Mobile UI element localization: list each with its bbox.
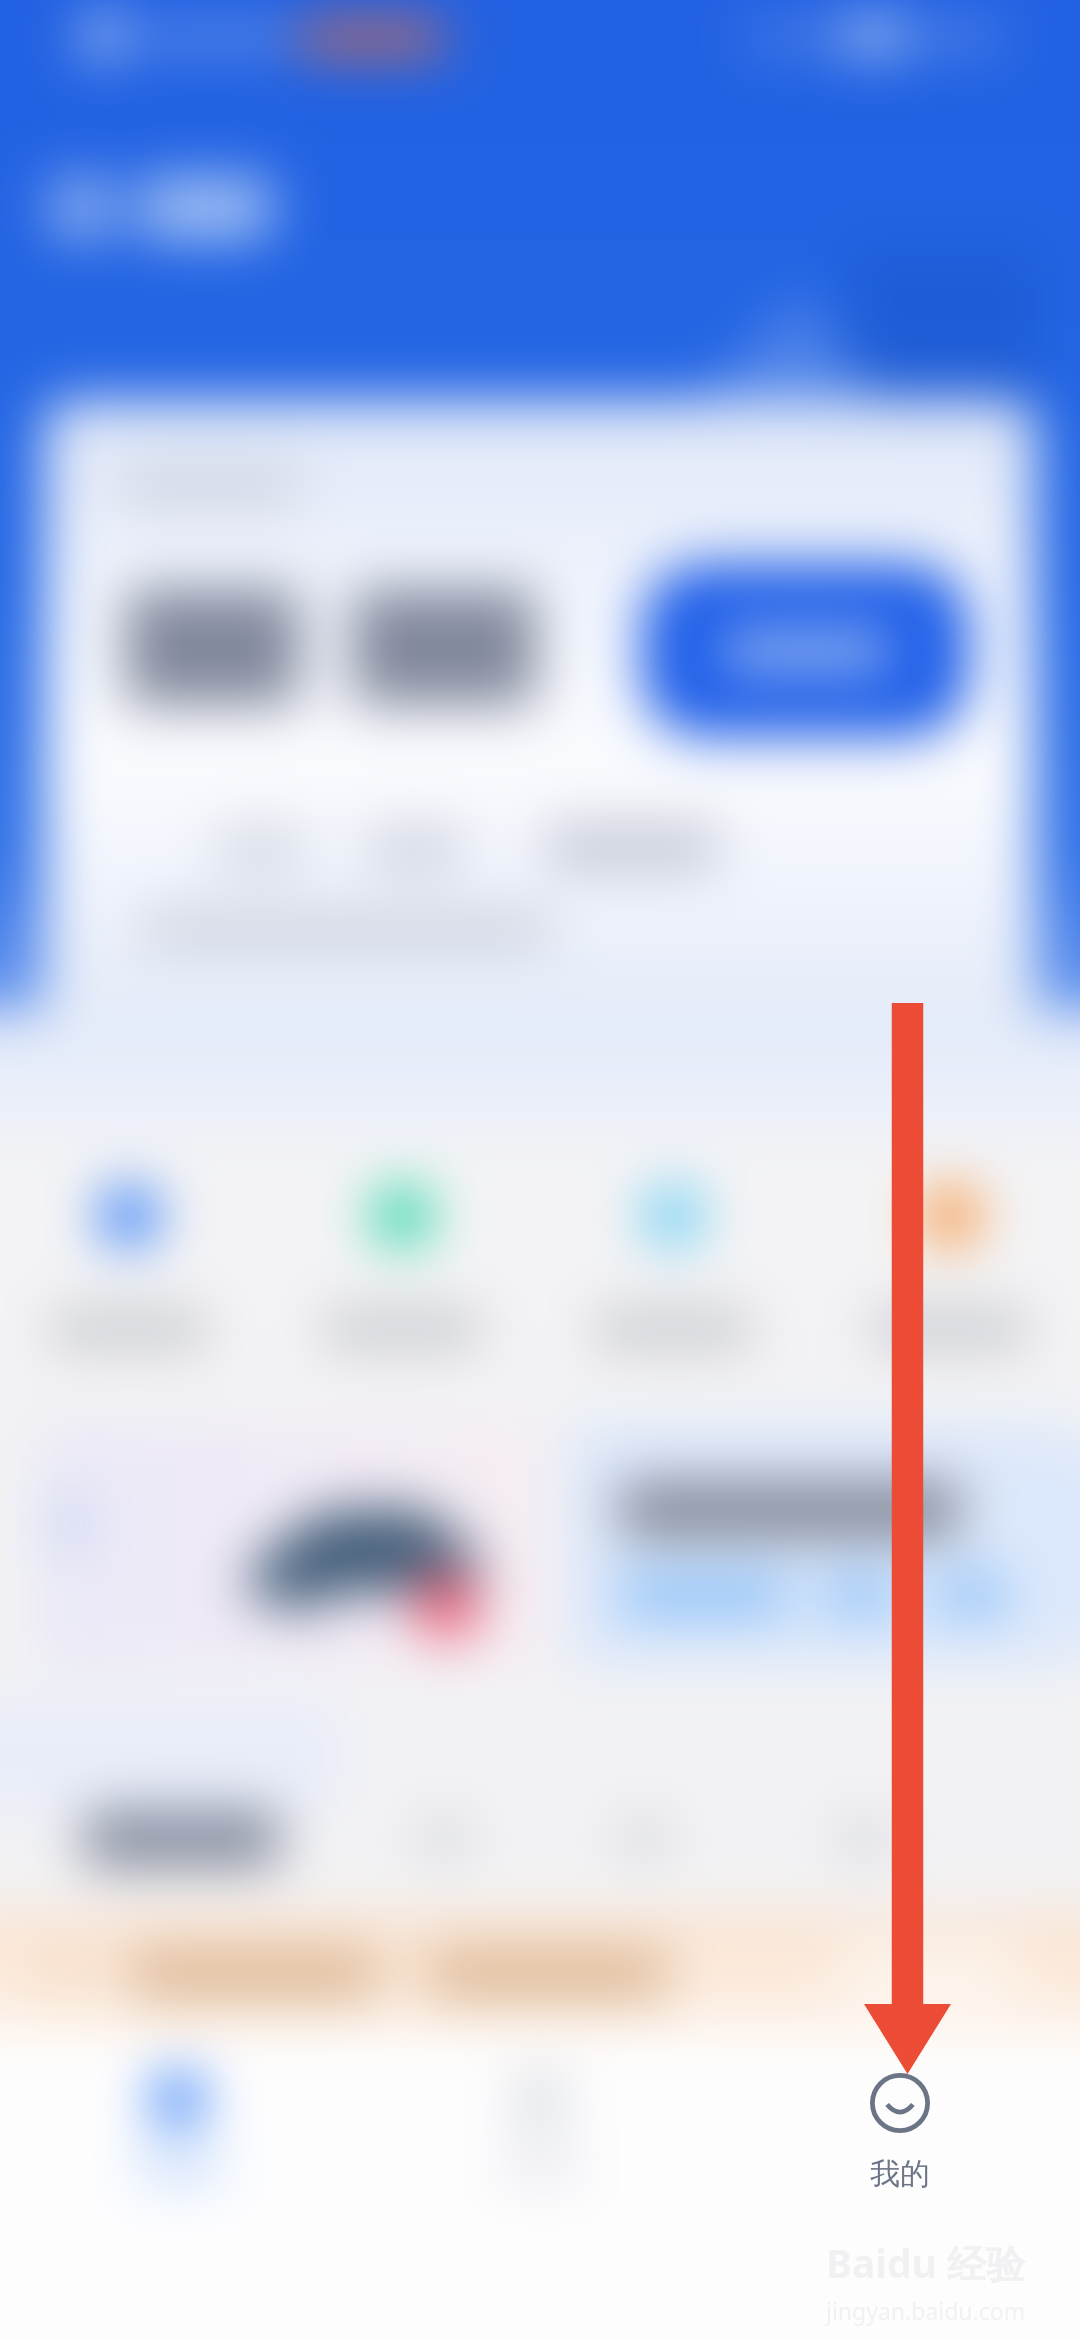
staticText: Baidu 经验	[826, 2236, 1026, 2289]
staticText: jingyan.baidu.com	[826, 2295, 1026, 2326]
staticText: 我的	[870, 2155, 930, 2193]
button[interactable]: 我的	[820, 2073, 980, 2193]
other: 我的	[870, 2073, 930, 2133]
